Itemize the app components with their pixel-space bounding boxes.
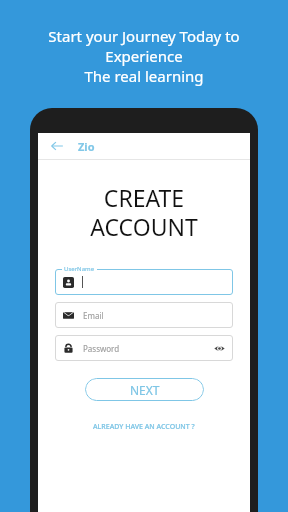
staticText: Start your Journey Today to Experience T…	[48, 26, 240, 86]
staticText: Password	[83, 343, 120, 354]
staticText: CREATE ACCOUNT	[38, 182, 250, 243]
staticText: ALREADY HAVE AN ACCOUNT ?	[93, 422, 195, 432]
button[interactable]: Password	[55, 335, 233, 361]
staticText: Email	[83, 310, 104, 321]
button[interactable]: Email	[55, 302, 233, 328]
button[interactable]: NEXT	[85, 378, 204, 401]
button[interactable]: ALREADY HAVE AN ACCOUNT ?	[89, 418, 199, 436]
staticText: UserName	[64, 265, 95, 273]
button[interactable]: Show password	[214, 343, 225, 354]
staticText: NEXT	[130, 382, 160, 398]
staticText: Zio	[78, 139, 95, 154]
button[interactable]: Back	[48, 137, 66, 155]
button[interactable]	[55, 269, 233, 295]
